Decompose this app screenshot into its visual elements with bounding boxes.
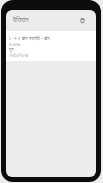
button[interactable]: ১ ➝ ১ গ্রাম ক্যালরি - গ্রাম xyxy=(6,31,96,61)
staticText: ১ ➝ ১ গ্রাম ক্যালরি - গ্রাম xyxy=(9,34,50,41)
button[interactable]: Delete history xyxy=(75,13,89,27)
staticText: ইতিহাস xyxy=(13,17,29,24)
staticText: ৪.১৮৬৮ xyxy=(9,41,22,47)
staticText: জুল xyxy=(9,47,14,51)
staticText: ১২/০১/২০২৪ xyxy=(9,52,29,58)
